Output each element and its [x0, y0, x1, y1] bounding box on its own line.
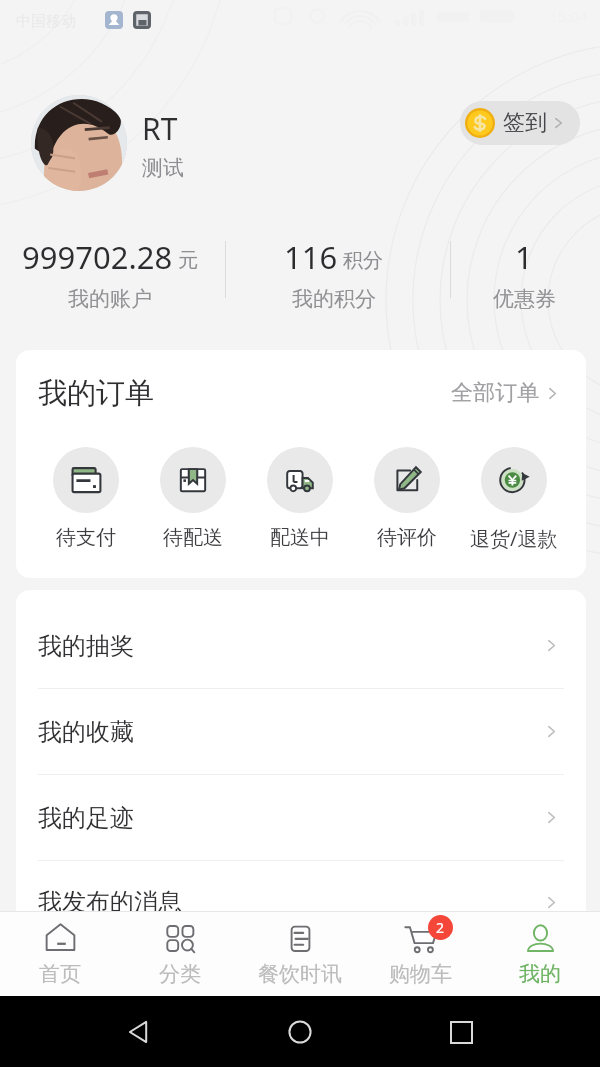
staticText: 退货/退款	[470, 525, 558, 552]
staticText: 积分	[343, 248, 383, 273]
staticText: 首页	[39, 961, 81, 987]
button[interactable]: 退货/退款	[460, 447, 567, 552]
staticText: RT	[142, 108, 178, 149]
button[interactable]: 首页	[0, 911, 120, 996]
button[interactable]: 全部订单	[451, 373, 557, 413]
staticText: 我发布的消息	[38, 887, 182, 917]
button[interactable]: 待支付	[32, 447, 139, 550]
button[interactable]: 999702.28	[0, 236, 219, 312]
staticText: 我的订单	[38, 375, 154, 412]
button[interactable]: 待配送	[139, 447, 246, 550]
staticText: 我的抽奖	[38, 631, 134, 661]
staticText: 我的账户	[68, 286, 152, 312]
button[interactable]: 我的收藏	[16, 689, 586, 775]
button[interactable]: 我发布的消息	[16, 861, 586, 930]
staticText: 我的	[519, 961, 561, 987]
staticText: 分类	[159, 961, 201, 987]
button[interactable]: 我的	[480, 911, 600, 996]
staticText: 待配送	[163, 525, 223, 550]
staticText: 优惠券	[493, 286, 556, 312]
staticText: 1	[515, 236, 533, 278]
staticText: 2	[436, 918, 445, 937]
button[interactable]: 116	[219, 236, 448, 312]
button[interactable]: Home	[278, 1010, 322, 1054]
staticText: 116	[284, 236, 338, 278]
staticText: 我的积分	[292, 286, 376, 312]
button[interactable]: 1	[448, 236, 600, 312]
staticText: 全部订单	[451, 379, 539, 407]
button[interactable]: Recent apps	[439, 1010, 483, 1054]
staticText: 中国移动	[16, 12, 76, 31]
staticText: 签到	[503, 109, 547, 137]
staticText: 待评价	[377, 525, 437, 550]
staticText: 餐饮时讯	[258, 961, 342, 987]
button[interactable]: 我的足迹	[16, 775, 586, 861]
staticText: 购物车	[389, 961, 452, 987]
button[interactable]: 配送中	[246, 447, 353, 550]
button[interactable]: Profile photo	[31, 95, 127, 191]
staticText: 我的收藏	[38, 717, 134, 747]
button[interactable]: 2	[360, 911, 480, 996]
button[interactable]: 分类	[120, 911, 240, 996]
staticText: 999702.28	[22, 236, 173, 278]
staticText: 测试	[142, 155, 184, 181]
button[interactable]: 签到	[460, 101, 580, 145]
staticText: 我的足迹	[38, 803, 134, 833]
button[interactable]: 餐饮时讯	[240, 911, 360, 996]
staticText: 配送中	[270, 525, 330, 550]
staticText: 待支付	[56, 525, 116, 550]
button[interactable]: 待评价	[353, 447, 460, 550]
staticText: 元	[178, 248, 198, 273]
button[interactable]: 我的抽奖	[16, 603, 586, 689]
button[interactable]: Back	[117, 1010, 161, 1054]
